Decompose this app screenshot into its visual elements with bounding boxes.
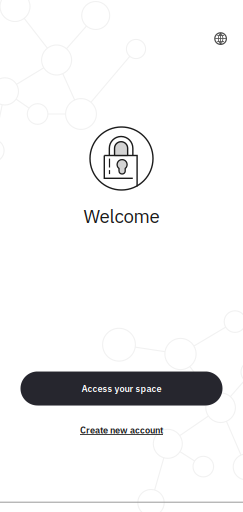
staticText: Create new account bbox=[80, 424, 163, 436]
button[interactable]: Access your space bbox=[20, 371, 222, 405]
staticText: Access your space bbox=[81, 382, 161, 394]
button[interactable]: Create new account bbox=[71, 420, 171, 440]
staticText: Welcome bbox=[83, 204, 159, 228]
button[interactable]: Language bbox=[205, 23, 237, 55]
